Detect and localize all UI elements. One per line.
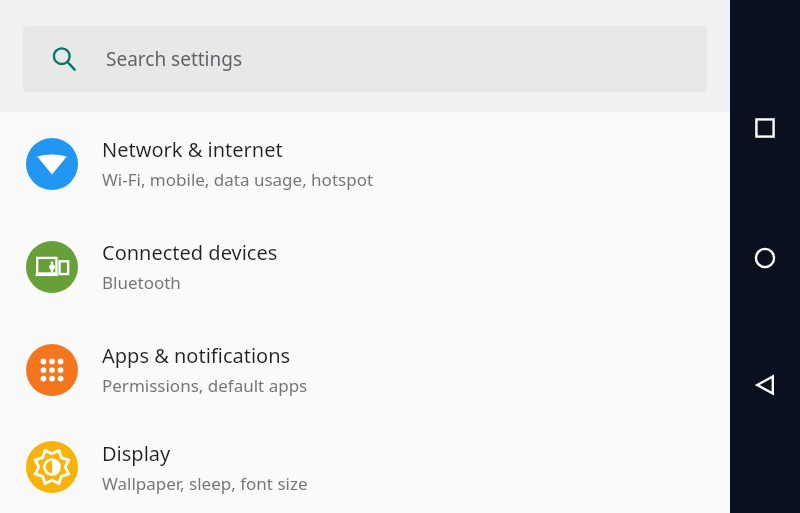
staticText: Wallpaper, sleep, font size: [102, 472, 308, 495]
button[interactable]: Connected devices: [0, 215, 730, 318]
button[interactable]: Home: [730, 228, 800, 288]
button[interactable]: Apps & notifications: [0, 318, 730, 421]
staticText: Display: [102, 440, 171, 467]
button[interactable]: Network & internet: [0, 112, 730, 215]
button[interactable]: Back: [730, 355, 800, 415]
staticText: Permissions, default apps: [102, 374, 308, 397]
staticText: Search settings: [106, 46, 243, 72]
staticText: Wi-Fi, mobile, data usage, hotspot: [102, 168, 374, 191]
button[interactable]: Search: [23, 26, 707, 92]
button[interactable]: Recents: [730, 98, 800, 158]
staticText: Bluetooth: [102, 271, 181, 294]
other: Search: [49, 44, 79, 74]
staticText: Apps & notifications: [102, 342, 291, 369]
staticText: Connected devices: [102, 239, 278, 266]
staticText: Network & internet: [102, 136, 283, 163]
button[interactable]: Display: [0, 421, 730, 513]
